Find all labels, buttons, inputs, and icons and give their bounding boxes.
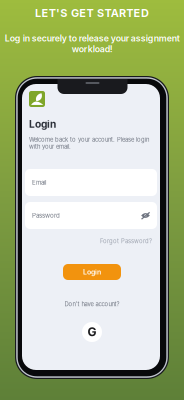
staticText: Log in securely to release your assignme… (4, 33, 179, 54)
button[interactable]: Password (25, 202, 157, 229)
staticText: Login (83, 268, 101, 276)
button[interactable]: Sign in with Google (82, 322, 102, 342)
staticText: Don't have account? (64, 300, 119, 308)
button[interactable]: Email (25, 169, 157, 196)
staticText: Forgot Password? (100, 237, 152, 245)
staticText: Login (29, 118, 56, 130)
button[interactable]: Forgot Password? (72, 236, 152, 245)
staticText: Welcome back to your account. Please log… (29, 136, 149, 150)
staticText: LET'S GET STARTED (35, 6, 149, 20)
staticText: G (87, 325, 96, 339)
staticText: Password (32, 212, 60, 219)
staticText: Email (32, 179, 46, 186)
button[interactable]: Login (63, 264, 121, 280)
button[interactable]: Don't have account? (47, 299, 137, 308)
